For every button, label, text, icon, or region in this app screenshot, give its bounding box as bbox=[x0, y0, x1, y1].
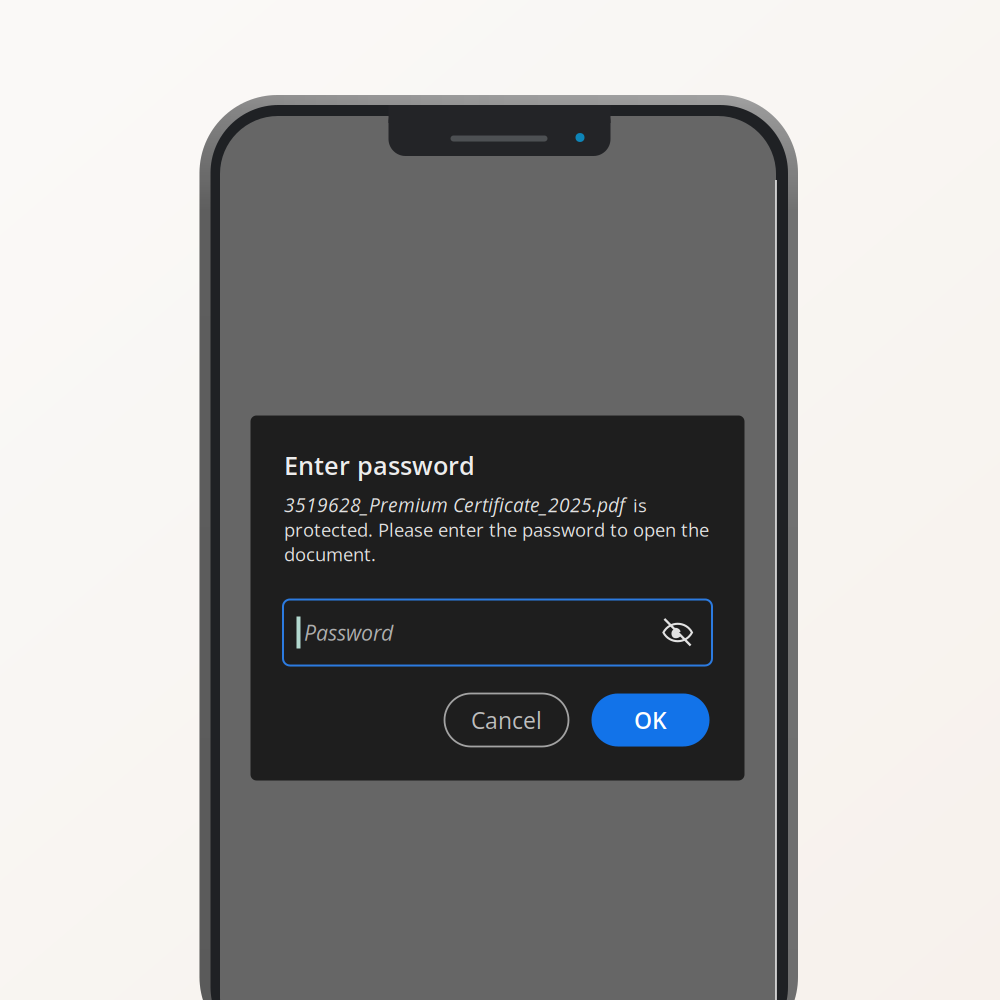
staticText: Cancel bbox=[471, 704, 542, 736]
staticText: Password bbox=[304, 618, 393, 647]
staticText: OK bbox=[634, 704, 667, 736]
staticText: Enter password bbox=[284, 448, 475, 482]
button[interactable]: OK bbox=[591, 693, 709, 746]
button[interactable]: Cancel bbox=[444, 693, 568, 746]
staticText: 3519628_Premium Certificate_2025.pdf is … bbox=[284, 492, 709, 566]
button[interactable]: Show password bbox=[661, 617, 695, 647]
